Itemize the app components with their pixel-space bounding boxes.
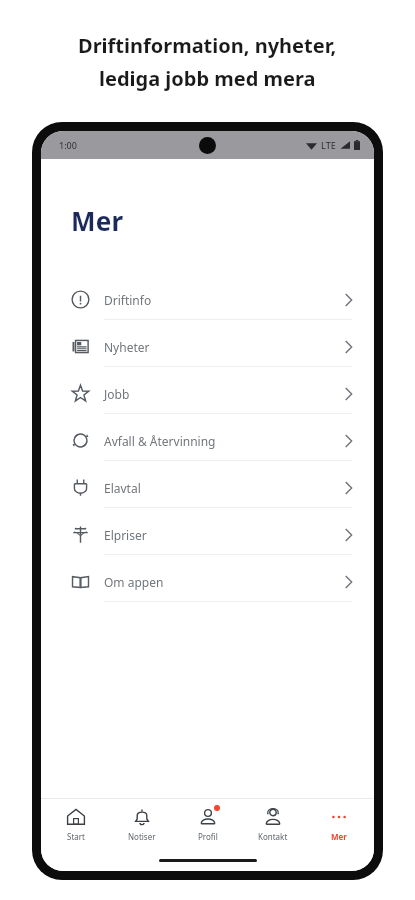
button[interactable]: Nyheter [41, 327, 374, 366]
staticText: 1:00 [59, 139, 77, 151]
button[interactable]: Jobb [41, 374, 374, 413]
button[interactable]: Notiser [111, 802, 173, 846]
staticText: Om appen [104, 574, 345, 590]
staticText: Mer [71, 203, 124, 238]
staticText: Elpriser [104, 527, 345, 543]
staticText: LTE [321, 139, 336, 151]
staticText: Driftinfo [104, 292, 345, 308]
staticText: lediga jobb med mera [99, 65, 316, 92]
button[interactable]: Om appen [41, 562, 374, 601]
staticText: Jobb [104, 386, 345, 402]
button[interactable]: Elavtal [41, 468, 374, 507]
button[interactable]: Mer [308, 802, 370, 846]
staticText: Mer [331, 831, 347, 842]
staticText: Notiser [128, 831, 156, 842]
staticText: Driftinformation, nyheter, [78, 32, 337, 59]
staticText: Kontakt [258, 831, 288, 842]
button[interactable]: Driftinfo [41, 280, 374, 319]
button[interactable]: Avfall & Återvinning [41, 421, 374, 460]
button[interactable]: Start [45, 802, 107, 846]
staticText: Nyheter [104, 339, 345, 355]
staticText: Start [67, 831, 85, 842]
staticText: Profil [198, 831, 218, 842]
button[interactable]: Kontakt [242, 802, 304, 846]
button[interactable]: Profil [177, 802, 239, 846]
staticText: Avfall & Återvinning [104, 433, 345, 449]
staticText: Elavtal [104, 480, 345, 496]
button[interactable]: Elpriser [41, 515, 374, 554]
